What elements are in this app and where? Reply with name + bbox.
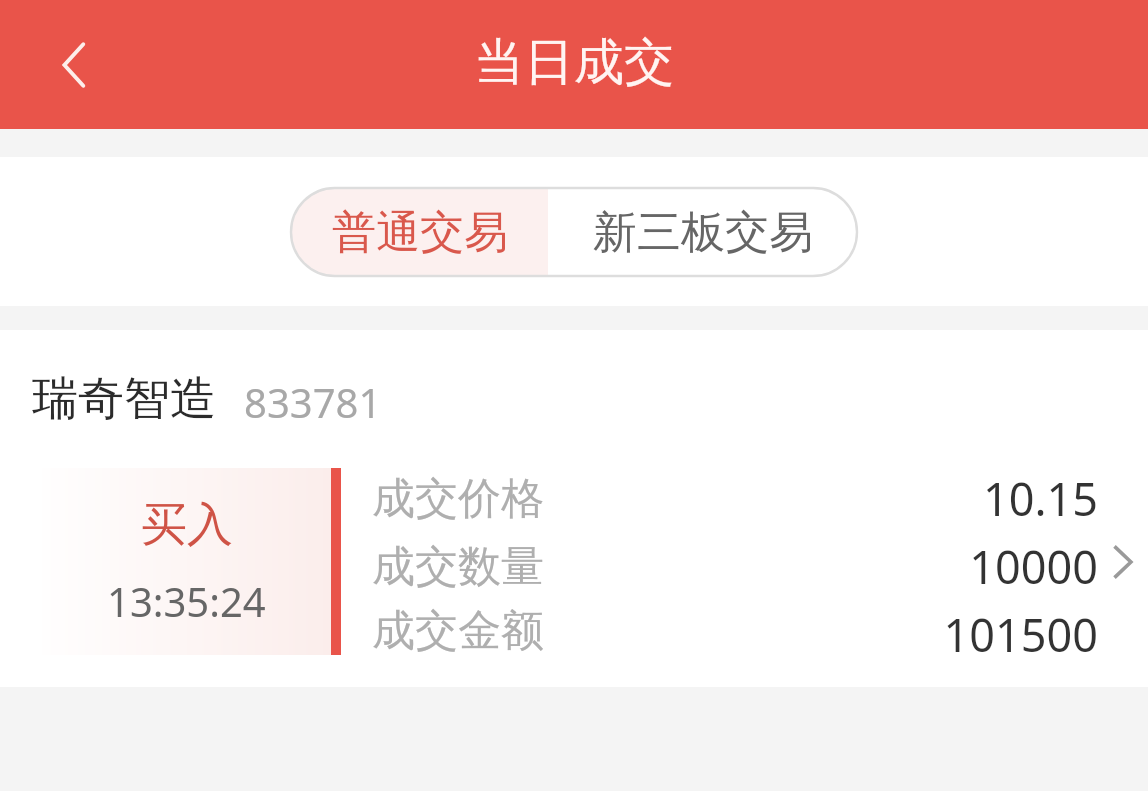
staticText: 新三板交易 xyxy=(593,205,813,260)
staticText: 10.15 xyxy=(544,468,1098,529)
button[interactable]: 瑞奇智造 xyxy=(0,330,1148,687)
staticText: 10000 xyxy=(544,536,1098,597)
staticText: 普通交易 xyxy=(332,205,508,260)
button[interactable]: 新三板交易 xyxy=(548,188,857,276)
button[interactable]: 普通交易 xyxy=(291,188,548,276)
staticText: 成交价格 xyxy=(372,472,544,526)
button[interactable]: Back xyxy=(38,28,112,102)
staticText: 当日成交 xyxy=(474,31,674,94)
staticText: 101500 xyxy=(544,604,1098,655)
staticText: 买入 xyxy=(141,496,233,554)
staticText: 成交金额 xyxy=(372,604,544,655)
staticText: 833781 xyxy=(244,375,382,429)
staticText: 13:35:24 xyxy=(107,574,266,628)
staticText: 瑞奇智造 xyxy=(32,370,216,428)
staticText: 成交数量 xyxy=(372,540,544,594)
